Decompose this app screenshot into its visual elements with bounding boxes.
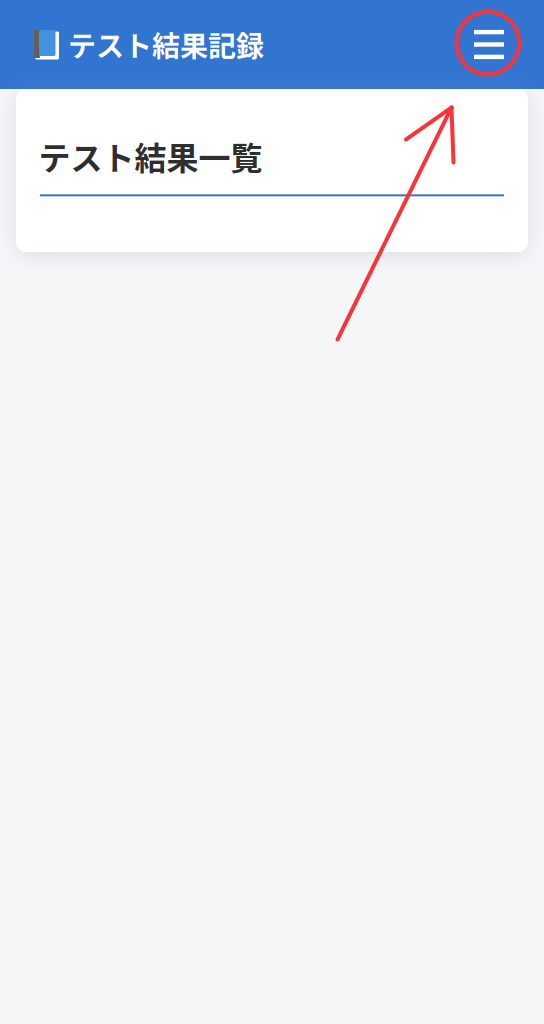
staticText: テスト結果一覧 bbox=[38, 133, 262, 179]
staticText: テスト結果記録 bbox=[68, 24, 264, 65]
button[interactable]: メニュー bbox=[465, 20, 513, 68]
